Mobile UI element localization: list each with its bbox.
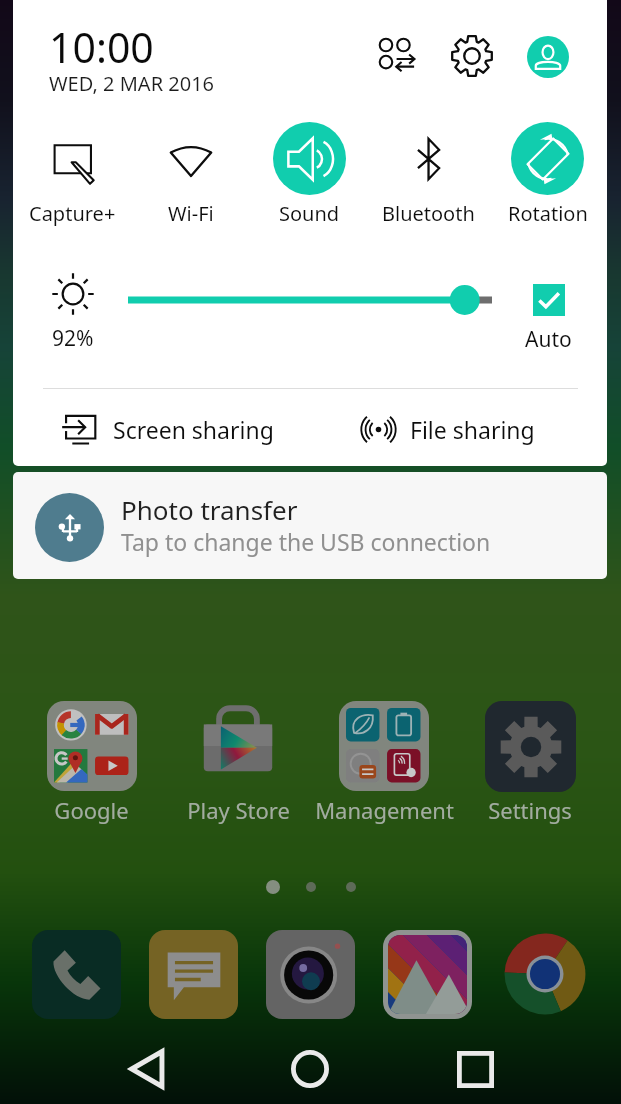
button[interactable]: Auto	[507, 262, 589, 354]
button[interactable]: Chrome	[486, 928, 603, 1020]
button[interactable]: Management	[311, 700, 457, 825]
staticText: 92%	[52, 324, 94, 353]
button[interactable]: Back	[96, 1034, 198, 1104]
button[interactable]: Edit quick settings	[368, 27, 426, 85]
button[interactable]: Settings	[443, 27, 501, 85]
staticText: Sound	[279, 200, 340, 227]
staticText: Google	[54, 795, 129, 825]
button[interactable]: Photo transfer	[13, 472, 607, 579]
staticText: WED, 2 MAR 2016	[49, 70, 215, 97]
staticText: Screen sharing	[113, 414, 274, 445]
button[interactable]: Gallery	[369, 928, 486, 1020]
button[interactable]: Home	[259, 1034, 361, 1104]
staticText: Tap to change the USB connection	[121, 526, 491, 557]
staticText: Play Store	[187, 795, 290, 825]
staticText: Auto	[525, 325, 572, 354]
button[interactable]: Google	[18, 700, 165, 825]
button[interactable]: Phone	[18, 928, 135, 1020]
staticText: Capture+	[29, 200, 116, 227]
button[interactable]: Play Store	[165, 700, 311, 825]
button[interactable]: Bluetooth	[369, 122, 488, 227]
button[interactable]: Settings	[457, 700, 603, 825]
staticText: Rotation	[508, 200, 588, 227]
button[interactable]: Sound	[250, 122, 369, 227]
staticText: Photo transfer	[121, 492, 298, 527]
button[interactable]: Screen sharing	[61, 404, 274, 454]
button[interactable]: Brightness	[32, 272, 114, 357]
button[interactable]: Capture+	[13, 122, 131, 227]
staticText: Wi-Fi	[168, 200, 214, 227]
button[interactable]: Recent apps	[424, 1034, 526, 1104]
button[interactable]: Wi-Fi	[131, 122, 250, 227]
button[interactable]: Brightness slider	[115, 276, 505, 324]
staticText: File sharing	[410, 414, 535, 445]
button[interactable]: Camera	[252, 928, 369, 1020]
staticText: Management	[315, 795, 454, 825]
button[interactable]: Messaging	[135, 928, 252, 1020]
button[interactable]: File sharing	[360, 404, 535, 454]
staticText: Bluetooth	[382, 200, 475, 227]
button[interactable]: Rotation	[488, 122, 607, 227]
button[interactable]: User profile	[527, 36, 569, 78]
staticText: 10:00	[49, 19, 154, 75]
staticText: Settings	[488, 795, 572, 825]
